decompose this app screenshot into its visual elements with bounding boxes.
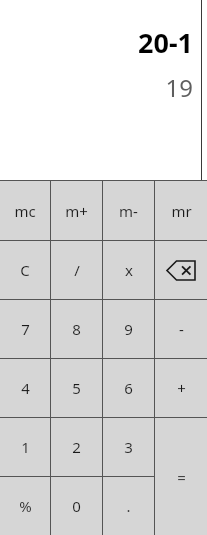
staticText: C <box>20 260 30 280</box>
staticText: m- <box>119 201 138 221</box>
staticText: 6 <box>124 378 133 398</box>
staticText: mc <box>14 201 36 221</box>
staticText: - <box>179 319 184 339</box>
button[interactable]: C <box>0 241 50 299</box>
staticText: 7 <box>21 319 30 339</box>
button[interactable]: + <box>155 359 207 417</box>
button[interactable]: x <box>103 241 154 299</box>
staticText: 2 <box>72 437 81 457</box>
staticText: 8 <box>72 319 81 339</box>
button[interactable]: = <box>155 418 207 535</box>
staticText: 4 <box>21 378 30 398</box>
staticText: . <box>126 496 131 516</box>
staticText: 19 <box>165 71 193 104</box>
button[interactable]: 9 <box>103 300 154 358</box>
button[interactable]: 6 <box>103 359 154 417</box>
staticText: x <box>125 260 133 280</box>
button[interactable]: / <box>51 241 102 299</box>
button[interactable]: 7 <box>0 300 50 358</box>
button[interactable]: m+ <box>51 181 102 240</box>
button[interactable]: - <box>155 300 207 358</box>
staticText: 20-1 <box>138 24 193 61</box>
button[interactable]: 3 <box>103 418 154 476</box>
button[interactable]: % <box>0 477 50 535</box>
staticText: 9 <box>124 319 133 339</box>
staticText: mr <box>171 201 192 221</box>
staticText: 1 <box>21 437 30 457</box>
button[interactable]: 8 <box>51 300 102 358</box>
staticText: = <box>177 467 186 487</box>
button[interactable]: Backspace <box>155 241 207 299</box>
button[interactable]: mr <box>155 181 207 240</box>
button[interactable]: m- <box>103 181 154 240</box>
staticText: m+ <box>65 201 88 221</box>
button[interactable]: 4 <box>0 359 50 417</box>
staticText: + <box>177 378 186 398</box>
staticText: / <box>74 260 80 280</box>
button[interactable]: 1 <box>0 418 50 476</box>
staticText: 0 <box>72 496 81 516</box>
staticText: 5 <box>72 378 81 398</box>
button[interactable]: 0 <box>51 477 102 535</box>
button[interactable]: 2 <box>51 418 102 476</box>
button[interactable]: mc <box>0 181 50 240</box>
staticText: 3 <box>124 437 133 457</box>
button[interactable]: 5 <box>51 359 102 417</box>
button[interactable]: . <box>103 477 154 535</box>
staticText: % <box>19 496 32 516</box>
